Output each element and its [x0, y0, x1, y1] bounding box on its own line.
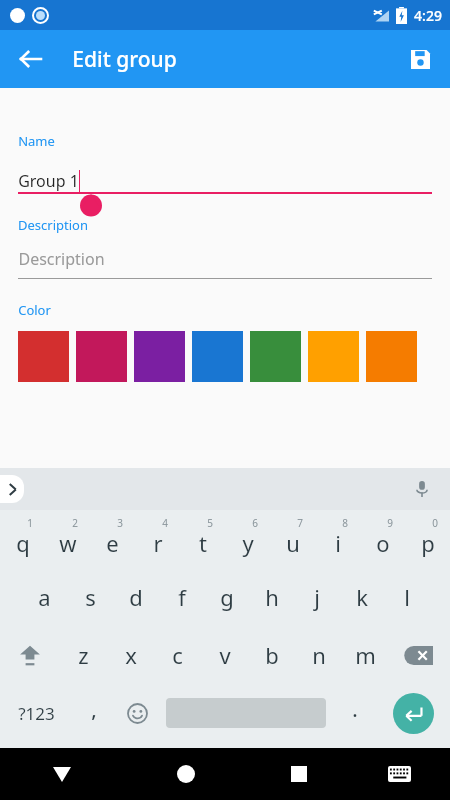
staticText: Description: [18, 248, 105, 270]
button[interactable]: Back: [0, 748, 124, 800]
button[interactable]: j: [294, 568, 339, 626]
staticText: 2: [72, 516, 78, 530]
button[interactable]: ?123: [0, 684, 72, 742]
button[interactable]: .: [333, 684, 377, 742]
staticText: t: [199, 528, 207, 558]
button[interactable]: 8: [315, 510, 360, 568]
button[interactable]: 1: [0, 510, 45, 568]
button[interactable]: Space: [159, 684, 333, 742]
staticText: v: [219, 640, 231, 670]
button[interactable]: Backspace: [389, 626, 450, 684]
staticText: c: [172, 640, 183, 670]
button[interactable]: s: [67, 568, 113, 626]
button[interactable]: 2: [45, 510, 90, 568]
staticText: l: [404, 582, 410, 612]
button[interactable]: h: [249, 568, 294, 626]
button[interactable]: 6: [225, 510, 270, 568]
staticText: z: [78, 640, 89, 670]
staticText: j: [314, 582, 320, 612]
button[interactable]: 4: [135, 510, 180, 568]
staticText: Color: [18, 301, 51, 319]
staticText: h: [265, 582, 279, 612]
button[interactable]: ,: [72, 684, 115, 742]
button[interactable]: Back: [8, 37, 52, 81]
staticText: 4:29: [414, 6, 442, 25]
staticText: q: [16, 528, 30, 558]
staticText: n: [312, 640, 326, 670]
staticText: p: [421, 528, 435, 558]
staticText: 9: [387, 516, 393, 530]
staticText: Name: [18, 132, 55, 150]
staticText: 4: [162, 516, 168, 530]
staticText: u: [286, 528, 300, 558]
button[interactable]: 0: [405, 510, 450, 568]
button[interactable]: d: [113, 568, 159, 626]
staticText: b: [265, 640, 279, 670]
button[interactable]: 9: [360, 510, 405, 568]
staticText: k: [356, 582, 368, 612]
staticText: 0: [432, 516, 438, 530]
staticText: Edit group: [72, 45, 177, 74]
button[interactable]: Recents: [248, 748, 349, 800]
button[interactable]: Emoji: [115, 684, 159, 742]
button[interactable]: 7: [270, 510, 315, 568]
staticText: e: [106, 528, 119, 558]
staticText: Description: [18, 216, 88, 234]
button[interactable]: k: [339, 568, 384, 626]
staticText: 5: [207, 516, 213, 530]
button[interactable]: n: [295, 626, 342, 684]
button[interactable]: g: [204, 568, 249, 626]
staticText: w: [59, 528, 77, 558]
staticText: ?123: [18, 702, 55, 725]
staticText: 6: [252, 516, 258, 530]
staticText: a: [38, 582, 51, 612]
button[interactable]: Expand suggestions: [0, 475, 24, 503]
staticText: 3: [117, 516, 123, 530]
button[interactable]: a: [21, 568, 67, 626]
button[interactable]: Voice input: [408, 475, 436, 503]
button[interactable]: x: [107, 626, 154, 684]
staticText: ,: [91, 696, 97, 723]
button[interactable]: m: [342, 626, 389, 684]
staticText: 8: [342, 516, 348, 530]
staticText: Group 1: [18, 170, 79, 192]
staticText: x: [125, 640, 137, 670]
staticText: o: [376, 528, 390, 558]
staticText: s: [85, 582, 96, 612]
button[interactable]: z: [60, 626, 107, 684]
staticText: r: [153, 528, 163, 558]
button[interactable]: l: [384, 568, 429, 626]
button[interactable]: f: [159, 568, 204, 626]
button[interactable]: Enter: [377, 684, 450, 742]
staticText: 1: [27, 516, 33, 530]
button[interactable]: Save: [398, 37, 442, 81]
button[interactable]: Home: [124, 748, 248, 800]
button[interactable]: Shift: [0, 626, 60, 684]
staticText: 7: [297, 516, 303, 530]
staticText: f: [178, 582, 186, 612]
button[interactable]: 3: [90, 510, 135, 568]
staticText: d: [129, 582, 143, 612]
button[interactable]: 5: [180, 510, 225, 568]
button[interactable]: v: [201, 626, 248, 684]
staticText: g: [220, 582, 234, 612]
staticText: i: [335, 528, 341, 558]
staticText: m: [355, 640, 376, 670]
staticText: y: [242, 528, 254, 558]
staticText: .: [352, 696, 358, 723]
button[interactable]: b: [248, 626, 295, 684]
button[interactable]: c: [154, 626, 201, 684]
button[interactable]: Switch keyboard: [349, 748, 450, 800]
